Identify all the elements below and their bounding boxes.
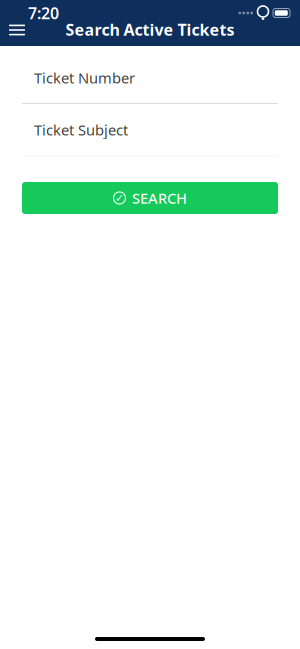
button[interactable]: Menu [0, 13, 34, 47]
button[interactable]: ✓ [22, 182, 278, 214]
staticText: Search Active Tickets [65, 19, 234, 40]
button[interactable]: Ticket Subject [22, 104, 278, 156]
staticText: 7:20 [28, 2, 59, 24]
staticText: Ticket Number [34, 68, 135, 87]
button[interactable]: Ticket Number [22, 46, 278, 104]
staticText: SEARCH [132, 188, 187, 208]
staticText: ✓ [115, 192, 124, 204]
staticText: Ticket Subject [34, 120, 128, 139]
